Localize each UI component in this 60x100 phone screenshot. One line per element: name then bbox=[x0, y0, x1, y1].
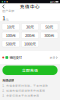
button[interactable]: 30元 bbox=[21, 23, 39, 30]
button[interactable]: 微信支付 bbox=[0, 51, 60, 64]
staticText: 10元 bbox=[7, 24, 15, 30]
staticText: 100% bbox=[50, 0, 55, 4]
button[interactable]: 300元 bbox=[40, 32, 58, 38]
staticText: 2、如遇充值问题请联系在线客服 bbox=[2, 89, 45, 93]
staticText: 50元 bbox=[45, 24, 53, 30]
button[interactable]: 1000元 bbox=[21, 40, 39, 47]
staticText: 充值说明 bbox=[2, 78, 14, 83]
staticText: 元 bbox=[6, 18, 9, 22]
staticText: 充值中心 bbox=[20, 3, 40, 10]
button[interactable]: 立即充值 bbox=[2, 65, 58, 75]
staticText: 300元 bbox=[44, 32, 54, 38]
staticText: 500元 bbox=[6, 41, 16, 47]
staticText: 1000元 bbox=[24, 41, 36, 47]
staticText: 账户余额 bbox=[2, 9, 14, 13]
staticText: 立即充值 bbox=[22, 67, 38, 73]
staticText: 100元 bbox=[6, 32, 16, 38]
staticText: 更多 bbox=[49, 55, 55, 60]
staticText: 1、充值金额即时到账，不支持退款 bbox=[2, 84, 48, 88]
staticText: 微信支付 bbox=[9, 55, 21, 60]
staticText: 30元 bbox=[26, 24, 34, 30]
button[interactable]: 10元 bbox=[2, 23, 19, 30]
staticText: 1 bbox=[2, 13, 5, 22]
button[interactable]: 500元 bbox=[2, 40, 19, 47]
staticText: 3、余额仅限本平台消费使用 bbox=[2, 94, 39, 98]
staticText: 200元 bbox=[25, 32, 35, 38]
button[interactable]: 100元 bbox=[2, 32, 19, 38]
button[interactable]: 200元 bbox=[21, 32, 39, 38]
button[interactable]: Back bbox=[0, 3, 7, 9]
button[interactable]: 50元 bbox=[40, 23, 58, 30]
